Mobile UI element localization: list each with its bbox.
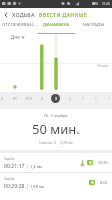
- staticText: 2: [41, 96, 43, 101]
- staticText: 6: [95, 96, 97, 101]
- staticText: ДИНАМИКА: [43, 21, 70, 27]
- staticText: 00:29:28: [4, 182, 25, 189]
- staticText: Ходьба: [4, 157, 15, 161]
- staticText: НАГРАДЫ: [83, 21, 105, 27]
- staticText: 7: [108, 96, 110, 101]
- staticText: Дни: [11, 34, 20, 40]
- staticText: 21:43: [102, 2, 110, 6]
- staticText: ОТСЛЕЖИВАН...: [2, 21, 37, 27]
- button[interactable]: ВВЕСТИ ДАННЫЕ: [38, 8, 88, 21]
- staticText: 0: [1, 96, 3, 101]
- button[interactable]: 3: [51, 94, 60, 103]
- staticText: 00:21:17: [4, 162, 25, 169]
- staticText: 1,89 км: [30, 184, 45, 189]
- button[interactable]: НАГРАДЫ: [75, 20, 112, 34]
- staticText: 50 мин.: [32, 120, 80, 138]
- staticText: 3,29 км: [60, 140, 73, 145]
- staticText: 30 мин: [97, 64, 108, 68]
- staticText: ХОДЬБА: [12, 11, 35, 18]
- button[interactable]: Дни: [11, 34, 25, 40]
- button[interactable]: ДИНАМИКА: [38, 20, 75, 34]
- staticText: 70%: [92, 2, 98, 6]
- button[interactable]: ОТСЛЕЖИВАН...: [0, 20, 38, 34]
- staticText: Пт, 3 ноября: [44, 113, 68, 118]
- staticText: 31: [13, 96, 17, 101]
- staticText: 8:03: [100, 180, 108, 185]
- button[interactable]: Back: [0, 8, 12, 21]
- staticText: Сеансы: 2: [39, 140, 56, 145]
- staticText: ВВЕСТИ ДАННЫЕ: [39, 11, 87, 18]
- button[interactable]: Ходьба: [0, 173, 112, 192]
- staticText: 5: [82, 96, 84, 101]
- staticText: 1/11: [25, 96, 33, 101]
- staticText: 3: [55, 96, 57, 101]
- staticText: Ходьба: [4, 177, 15, 181]
- button[interactable]: Ходьба: [0, 153, 112, 172]
- staticText: 1,4 км: [30, 164, 42, 169]
- staticText: 4: [69, 96, 71, 101]
- staticText: 20:36: [98, 160, 108, 165]
